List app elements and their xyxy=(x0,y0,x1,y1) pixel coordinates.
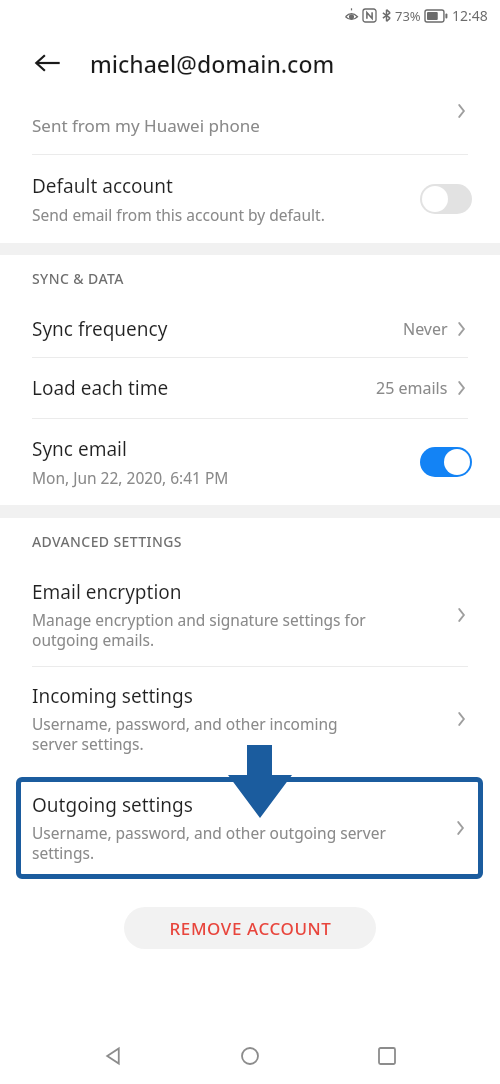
staticText: Username, password, and other incoming s… xyxy=(32,713,338,755)
button[interactable]: Recents xyxy=(363,1032,411,1080)
button[interactable]: Sync frequency xyxy=(0,301,500,357)
button[interactable]: Sent from my Huawei phone xyxy=(0,96,500,154)
button[interactable]: Email encryption xyxy=(0,564,500,666)
button[interactable]: Sync email xyxy=(0,419,500,505)
button[interactable]: Toggle off xyxy=(420,184,472,214)
button[interactable]: Back xyxy=(28,43,68,83)
staticText: Send email from this account by default. xyxy=(32,204,325,225)
button[interactable]: Incoming settings xyxy=(0,667,500,771)
button[interactable]: Back xyxy=(89,1032,137,1080)
staticText: SYNC & DATA xyxy=(32,269,124,288)
staticText: Sync frequency xyxy=(32,316,403,342)
staticText: REMOVE ACCOUNT xyxy=(169,917,332,940)
button[interactable]: Load each time xyxy=(0,358,500,418)
staticText: Incoming settings xyxy=(32,683,193,709)
button[interactable]: Outgoing settings xyxy=(16,777,483,879)
staticText: 12:48 xyxy=(452,6,488,25)
staticText: Username, password, and other outgoing s… xyxy=(32,822,386,864)
staticText: Never xyxy=(403,318,448,340)
staticText: Default account xyxy=(32,173,173,199)
staticText: Load each time xyxy=(32,375,376,401)
staticText: Outgoing settings xyxy=(32,792,193,818)
staticText: 73% xyxy=(395,7,421,25)
staticText: 25 emails xyxy=(376,377,448,399)
button[interactable]: Default account xyxy=(0,155,500,243)
staticText: Sync email xyxy=(32,436,127,462)
staticText: Email encryption xyxy=(32,579,182,605)
staticText: Mon, Jun 22, 2020, 6:41 PM xyxy=(32,467,229,488)
staticText: ADVANCED SETTINGS xyxy=(32,532,182,551)
staticText: michael@domain.com xyxy=(90,48,335,79)
staticText: Manage encryption and signature settings… xyxy=(32,609,366,651)
button[interactable]: REMOVE ACCOUNT xyxy=(124,907,376,949)
button[interactable]: Home xyxy=(226,1032,274,1080)
staticText: Sent from my Huawei phone xyxy=(32,114,260,137)
button[interactable]: Toggle on xyxy=(420,447,472,477)
